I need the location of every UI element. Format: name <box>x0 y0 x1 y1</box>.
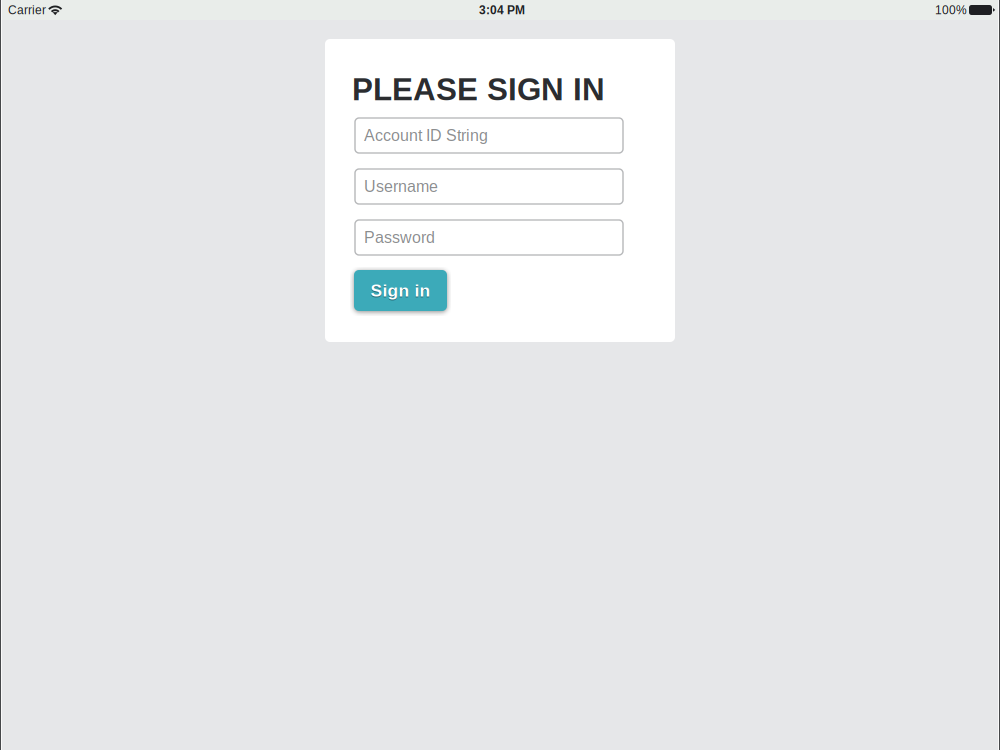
staticText: Password <box>364 229 435 246</box>
staticText: Carrier <box>8 3 46 17</box>
staticText: PLEASE SIGN IN <box>352 72 605 107</box>
button[interactable]: Sign in <box>354 270 447 311</box>
button[interactable]: Account ID String <box>355 118 623 153</box>
button[interactable]: Username <box>355 169 623 204</box>
staticText: Username <box>364 178 438 195</box>
staticText: 3:04 PM <box>479 3 525 17</box>
staticText: Account ID String <box>364 127 488 144</box>
staticText: 100% <box>935 3 967 17</box>
button[interactable]: Password <box>355 220 623 255</box>
staticText: Sign in <box>370 281 430 300</box>
